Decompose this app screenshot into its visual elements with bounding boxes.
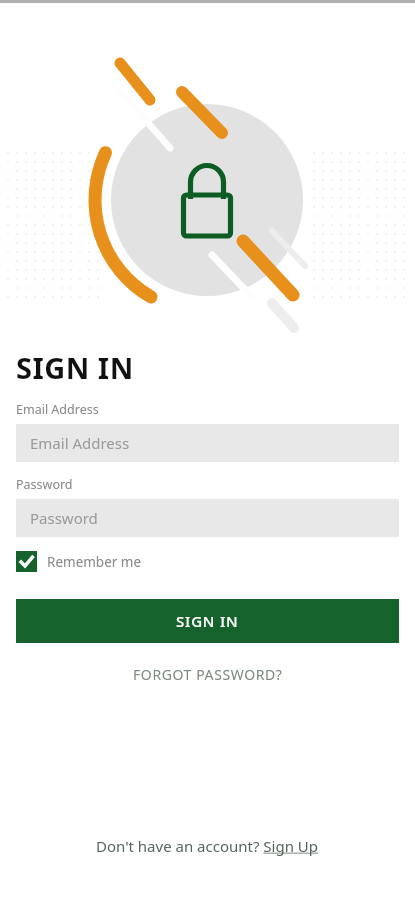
button[interactable]: Password: [16, 499, 399, 537]
staticText: SIGN IN: [176, 611, 239, 631]
button[interactable]: FORGOT PASSWORD?: [16, 665, 399, 684]
staticText: Email Address: [30, 433, 130, 453]
button[interactable]: Don't have an account? Sign Up: [0, 836, 415, 900]
staticText: Password: [30, 508, 98, 528]
button[interactable]: Email Address: [16, 424, 399, 462]
button[interactable]: SIGN IN: [16, 599, 399, 643]
button[interactable]: Remember me: [16, 551, 142, 572]
staticText: Password: [16, 476, 73, 493]
staticText: FORGOT PASSWORD?: [133, 665, 283, 684]
staticText: Don't have an account? Sign Up: [96, 836, 319, 856]
staticText: Email Address: [16, 401, 99, 418]
staticText: Remember me: [47, 553, 142, 571]
staticText: SIGN IN: [16, 348, 134, 387]
